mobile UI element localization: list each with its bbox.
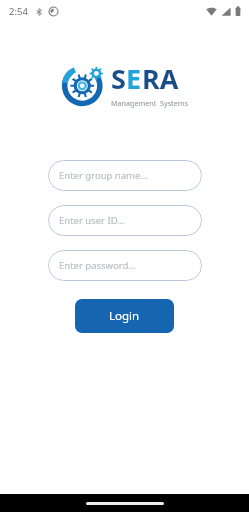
button[interactable]: Enter group name... — [48, 160, 202, 191]
button[interactable]: Home gesture — [86, 502, 164, 505]
button[interactable]: Login — [75, 299, 174, 333]
staticText: E — [126, 60, 142, 97]
staticText: RA — [142, 60, 179, 97]
staticText: Login — [109, 308, 140, 324]
staticText: Enter password... — [59, 259, 137, 272]
button[interactable]: Enter password... — [48, 250, 202, 281]
staticText: 2:54 — [9, 5, 28, 18]
staticText: Enter group name... — [59, 169, 148, 182]
staticText: S — [111, 60, 126, 97]
staticText: Enter user ID... — [59, 214, 125, 227]
staticText: Management Systems — [111, 98, 188, 108]
button[interactable]: Enter user ID... — [48, 205, 202, 236]
